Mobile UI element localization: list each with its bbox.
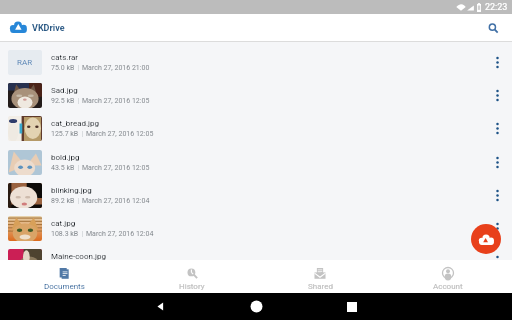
button[interactable]: Recent apps — [304, 293, 400, 320]
staticText: March 27, 2016 12:05 — [82, 164, 150, 172]
staticText: cat_bread.jpg — [51, 119, 100, 128]
button[interactable]: Maine-coon.jpg — [0, 245, 512, 260]
staticText: Maine-coon.jpg — [51, 252, 106, 260]
button[interactable]: History — [128, 260, 256, 293]
staticText: 92.5 kB — [51, 97, 75, 105]
staticText: cats.rar — [51, 53, 79, 62]
staticText: Account — [433, 282, 463, 291]
button[interactable]: More options — [482, 179, 512, 212]
button[interactable]: More options — [482, 146, 512, 179]
staticText: History — [179, 282, 205, 291]
staticText: March 27, 2016 12:05 — [82, 97, 150, 105]
button[interactable]: cat.jpg — [0, 212, 512, 245]
button[interactable]: cat_bread.jpg — [0, 112, 512, 145]
staticText: Sad.jpg — [51, 86, 78, 95]
staticText: RAR — [17, 58, 33, 67]
staticText: Shared — [308, 282, 333, 291]
staticText: March 27, 2016 12:05 — [86, 130, 154, 138]
button[interactable]: More options — [482, 46, 512, 79]
button[interactable]: bold.jpg — [0, 146, 512, 179]
staticText: March 27, 2016 12:04 — [86, 230, 154, 238]
staticText: 22:23 — [485, 2, 508, 13]
staticText: 125.7 kB — [51, 130, 79, 138]
staticText: March 27, 2016 21:00 — [82, 64, 150, 72]
staticText: 89.2 kB — [51, 197, 75, 205]
staticText: 75.0 kB — [51, 64, 75, 72]
button[interactable]: Account — [384, 260, 512, 293]
button[interactable]: Upload — [471, 224, 501, 254]
button[interactable]: More options — [482, 245, 512, 260]
staticText: 108.3 kB — [51, 230, 79, 238]
staticText: blinking.jpg — [51, 186, 92, 195]
button[interactable]: Home — [208, 293, 304, 320]
button[interactable]: Shared — [256, 260, 384, 293]
staticText: bold.jpg — [51, 153, 80, 162]
button[interactable]: RAR — [0, 46, 512, 79]
staticText: 43.5 kB — [51, 164, 75, 172]
button[interactable]: Documents — [0, 260, 128, 293]
staticText: cat.jpg — [51, 219, 76, 228]
button[interactable]: blinking.jpg — [0, 179, 512, 212]
staticText: March 27, 2016 12:04 — [82, 197, 150, 205]
button[interactable]: Search — [481, 16, 505, 40]
button[interactable]: Sad.jpg — [0, 79, 512, 112]
button[interactable]: More options — [482, 79, 512, 112]
button[interactable]: More options — [482, 112, 512, 145]
button[interactable]: More options — [482, 212, 512, 245]
staticText: Documents — [44, 282, 85, 291]
staticText: VKDrive — [32, 23, 65, 34]
button[interactable]: Back — [112, 293, 208, 320]
